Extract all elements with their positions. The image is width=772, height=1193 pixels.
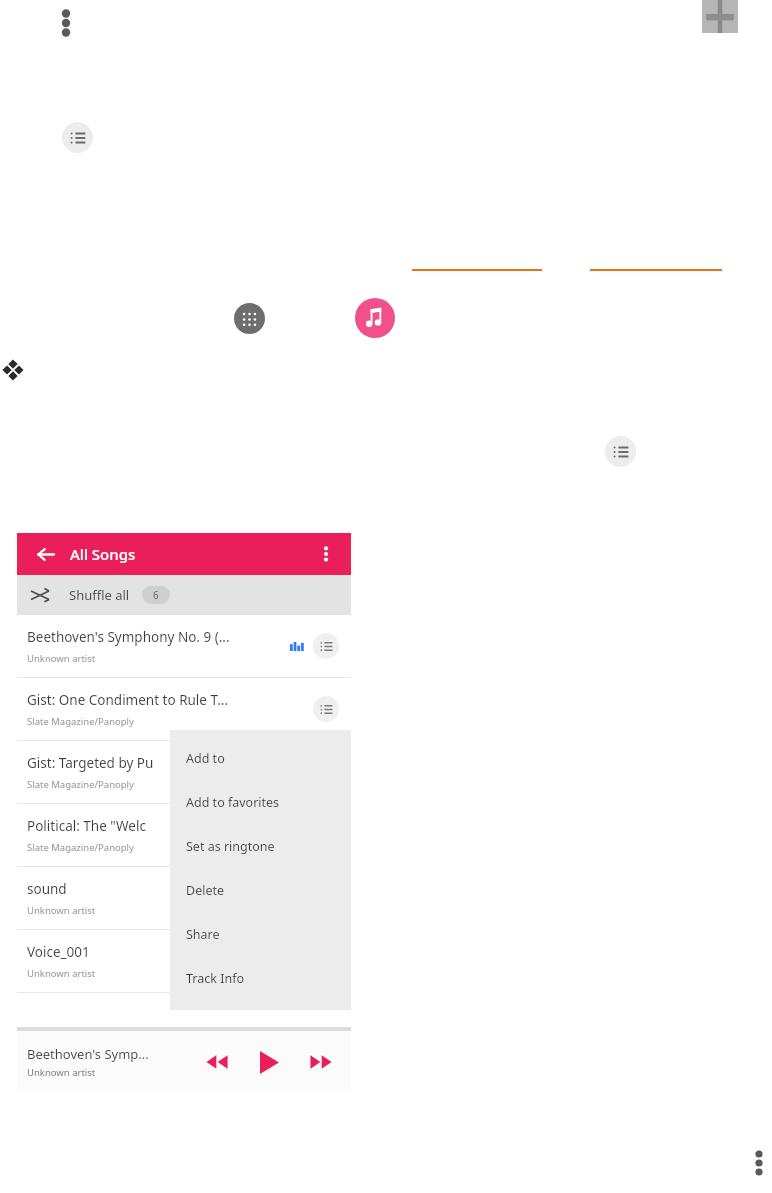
staticText: Slate Magazine/Panoply [27, 841, 134, 854]
button[interactable]: Add to favorites [170, 780, 351, 824]
button[interactable]: Play [249, 1042, 289, 1082]
button[interactable]: Political: The "Welc [17, 804, 351, 866]
staticText: Unknown artist [27, 1066, 96, 1079]
button[interactable]: Set as ringtone [170, 824, 351, 868]
button[interactable]: sound [17, 867, 351, 929]
button[interactable]: Delete [170, 868, 351, 912]
button[interactable]: Add to [170, 736, 351, 780]
staticText: Beethoven's Symp... [27, 1045, 149, 1063]
button[interactable]: Track options [313, 696, 339, 722]
staticText: Add to favorites [186, 794, 280, 811]
staticText: Delete [186, 882, 225, 899]
button[interactable]: Share [170, 912, 351, 956]
button[interactable]: All apps [234, 303, 265, 334]
button[interactable]: Music app [355, 298, 395, 338]
button[interactable]: Shuffle all [17, 575, 351, 615]
staticText: Voice_001 [27, 943, 90, 961]
staticText: Slate Magazine/Panoply [27, 715, 134, 728]
staticText: 6 [153, 588, 159, 602]
staticText: Unknown artist [27, 967, 96, 980]
staticText: Beethoven's Symphony No. 9 (... [27, 628, 230, 646]
button[interactable]: Back [33, 542, 57, 566]
button[interactable]: Beethoven's Symphony No. 9 (... [17, 615, 351, 677]
button[interactable]: Next [303, 1044, 339, 1080]
button[interactable]: More options [748, 1143, 770, 1183]
staticText: Gist: Targeted by Pu [27, 754, 154, 772]
staticText: Gist: One Condiment to Rule T... [27, 691, 229, 709]
button[interactable]: Previous [199, 1044, 235, 1080]
staticText: Shuffle all [69, 586, 130, 604]
button[interactable]: Gist: One Condiment to Rule T... [17, 678, 351, 740]
button[interactable]: More options [54, 6, 78, 40]
staticText: sound [27, 880, 67, 898]
staticText: Political: The "Welc [27, 817, 146, 835]
staticText: Share [186, 926, 220, 943]
button[interactable]: Add [702, 0, 738, 33]
staticText: Unknown artist [27, 904, 96, 917]
staticText: Add to [186, 750, 225, 767]
button[interactable]: Track options [313, 633, 339, 659]
staticText: Slate Magazine/Panoply [27, 778, 134, 791]
button[interactable]: Track Info [170, 956, 351, 1000]
button[interactable]: Gist: Targeted by Pu [17, 741, 351, 803]
staticText: Unknown artist [27, 652, 96, 665]
button[interactable]: Open list [605, 436, 636, 467]
button[interactable]: More options [315, 537, 337, 571]
staticText: Track Info [186, 970, 245, 987]
button[interactable]: Open list [62, 122, 93, 153]
staticText: All Songs [70, 544, 136, 564]
button[interactable]: Voice_001 [17, 930, 351, 992]
staticText: Set as ringtone [186, 838, 275, 855]
button[interactable]: Beethoven's Symp... [17, 1031, 351, 1093]
